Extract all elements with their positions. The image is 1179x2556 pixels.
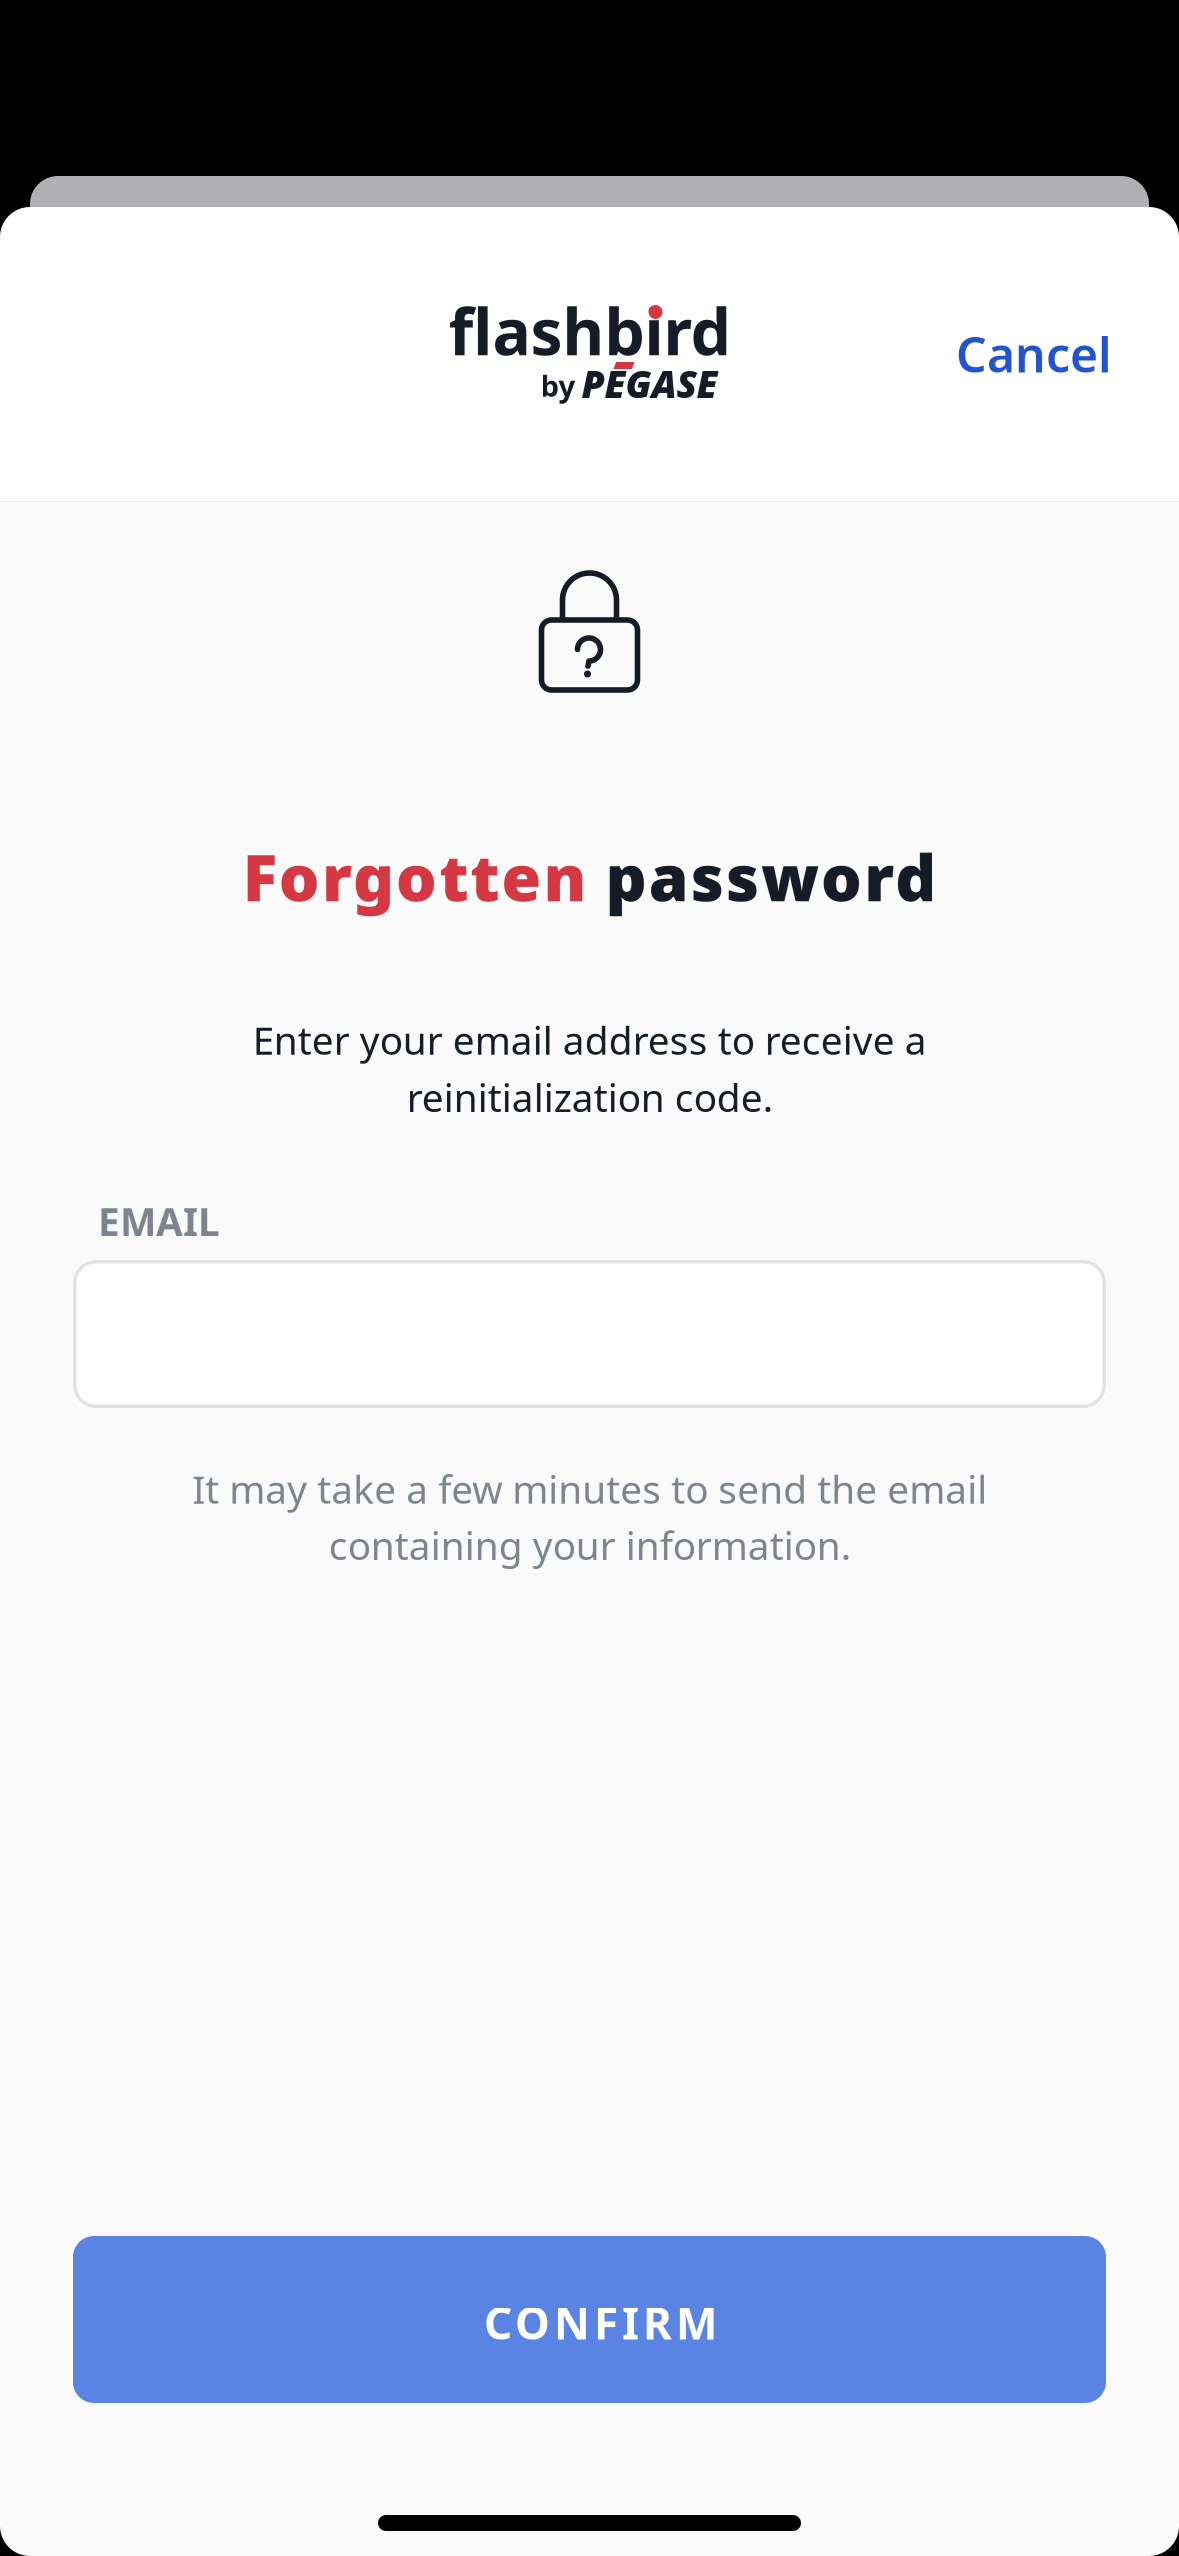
staticText: Enter your email address to receive a re… bbox=[252, 1014, 926, 1123]
staticText: flashbird bbox=[448, 288, 730, 373]
staticText: by bbox=[540, 366, 575, 405]
button[interactable]: Cancel bbox=[936, 298, 1132, 410]
staticText: Cancel bbox=[956, 322, 1112, 386]
staticText: Forgotten bbox=[243, 834, 586, 919]
button[interactable]: CONFIRM bbox=[73, 2236, 1106, 2403]
staticText: password bbox=[586, 834, 936, 919]
staticText: EMAIL bbox=[98, 1196, 220, 1247]
staticText: It may take a few minutes to send the em… bbox=[192, 1463, 987, 1571]
staticText: PEGASE bbox=[581, 358, 717, 409]
staticText: CONFIRM bbox=[484, 2293, 717, 2352]
